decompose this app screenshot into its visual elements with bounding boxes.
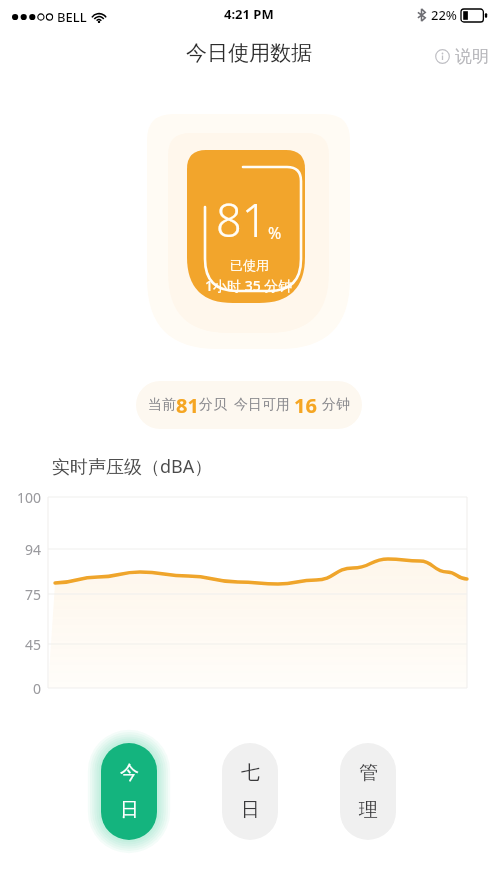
staticText: 94 — [0, 540, 41, 559]
staticText: 100 — [0, 488, 41, 507]
staticText: 已使用 — [230, 257, 269, 273]
staticText: 日 — [241, 798, 260, 822]
staticText: BELL — [57, 8, 87, 26]
staticText: 75 — [0, 585, 41, 604]
staticText: 16 — [294, 392, 317, 419]
staticText: 理 — [359, 798, 378, 822]
staticText: 实时声压级（dBA） — [52, 454, 213, 479]
button[interactable]: 管理 — [340, 743, 396, 840]
staticText: 今 — [120, 761, 139, 785]
staticText: 22% — [431, 6, 457, 24]
staticText: 说明 — [455, 46, 489, 67]
staticText: 今日使用数据 — [186, 40, 312, 66]
staticText: 4:21 PM — [224, 5, 274, 23]
button[interactable]: 当前 — [136, 381, 362, 429]
staticText: 81 — [176, 392, 199, 419]
staticText: 分贝 — [199, 396, 227, 414]
staticText: 七 — [241, 761, 260, 785]
staticText: 1小时 35 分钟 — [205, 276, 293, 295]
staticText: 分钟 — [322, 396, 350, 414]
button[interactable]: 今日 — [101, 743, 157, 840]
staticText: 45 — [0, 635, 41, 654]
staticText: 日 — [120, 798, 139, 822]
staticText: 0 — [0, 679, 41, 698]
staticText: 当前 — [148, 396, 176, 414]
staticText: 81 — [216, 189, 268, 250]
staticText: 今日可用 — [234, 396, 290, 414]
button[interactable]: 说明 — [427, 43, 497, 70]
staticText: % — [268, 222, 282, 244]
staticText: 管 — [359, 761, 378, 785]
button[interactable]: 七日 — [222, 743, 278, 840]
